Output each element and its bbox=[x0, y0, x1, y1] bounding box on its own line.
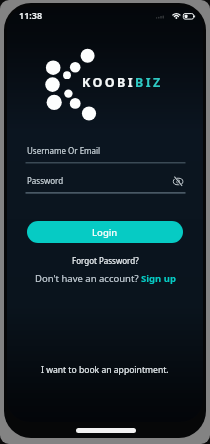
staticText: KOOBIBIZ bbox=[82, 74, 163, 91]
staticText: Password bbox=[27, 175, 64, 186]
button[interactable]: I want to book an appointment. bbox=[41, 364, 169, 376]
button[interactable]: Username Or Email bbox=[7, 145, 203, 156]
staticText: Username Or Email bbox=[27, 145, 101, 156]
button[interactable] bbox=[169, 173, 187, 188]
button[interactable]: Sign up bbox=[141, 272, 176, 285]
button[interactable]: Forgot Password? bbox=[72, 255, 139, 266]
staticText: 11:38 bbox=[19, 9, 43, 21]
staticText: Login bbox=[92, 226, 118, 239]
button[interactable]: Login bbox=[27, 221, 183, 243]
staticText: Don't have an account? bbox=[35, 272, 141, 285]
button[interactable]: Password bbox=[7, 175, 203, 186]
